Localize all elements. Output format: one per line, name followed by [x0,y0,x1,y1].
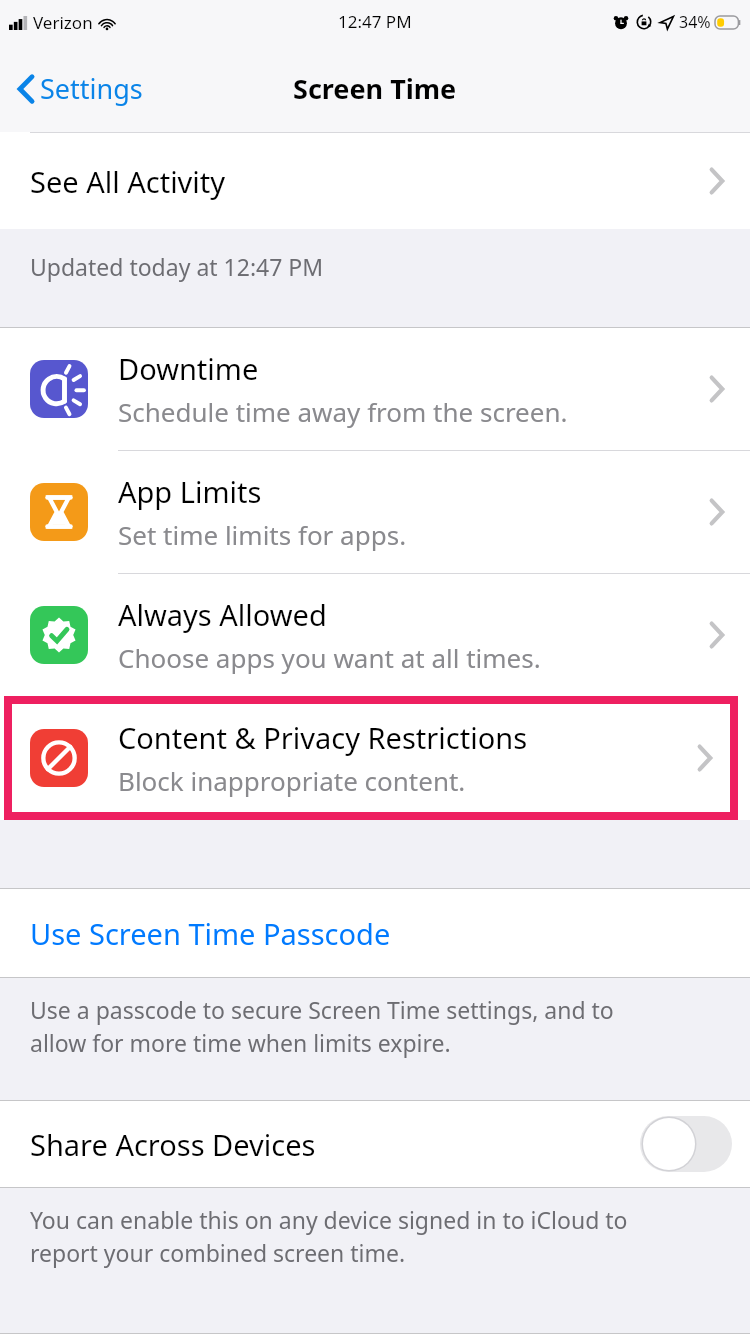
staticText: Content & Privacy Restrictions [118,718,528,757]
button[interactable]: Use Screen Time Passcode [0,889,750,977]
button[interactable]: Settings [12,62,149,115]
button[interactable]: Share Across Devices toggle [640,1116,732,1172]
button[interactable]: Content & Privacy Restrictions [4,696,738,820]
button[interactable]: App Limits [0,451,750,573]
staticText: Choose apps you want at all times. [118,640,541,675]
staticText: Use a passcode to secure Screen Time set… [30,994,614,1059]
button[interactable]: See All Activity [0,133,750,229]
staticText: Screen Time [293,70,457,107]
staticText: You can enable this on any device signed… [30,1204,628,1269]
staticText: 12:47 PM [338,10,412,33]
staticText: Set time limits for apps. [118,517,407,552]
staticText: Share Across Devices [30,1125,316,1164]
staticText: Settings [40,70,143,107]
staticText: 34% [679,11,711,33]
staticText: Downtime [118,349,259,388]
button[interactable]: Downtime [0,328,750,450]
staticText: See All Activity [30,162,226,201]
staticText: Block inappropriate content. [118,763,466,798]
staticText: Use Screen Time Passcode [30,914,391,953]
staticText: Always Allowed [118,595,327,634]
staticText: Schedule time away from the screen. [118,394,568,429]
button[interactable]: Always Allowed [0,574,750,696]
staticText: Verizon [33,11,93,34]
staticText: App Limits [118,472,262,511]
staticText: Updated today at 12:47 PM [30,251,324,282]
button[interactable]: Share Across Devices [0,1101,750,1187]
